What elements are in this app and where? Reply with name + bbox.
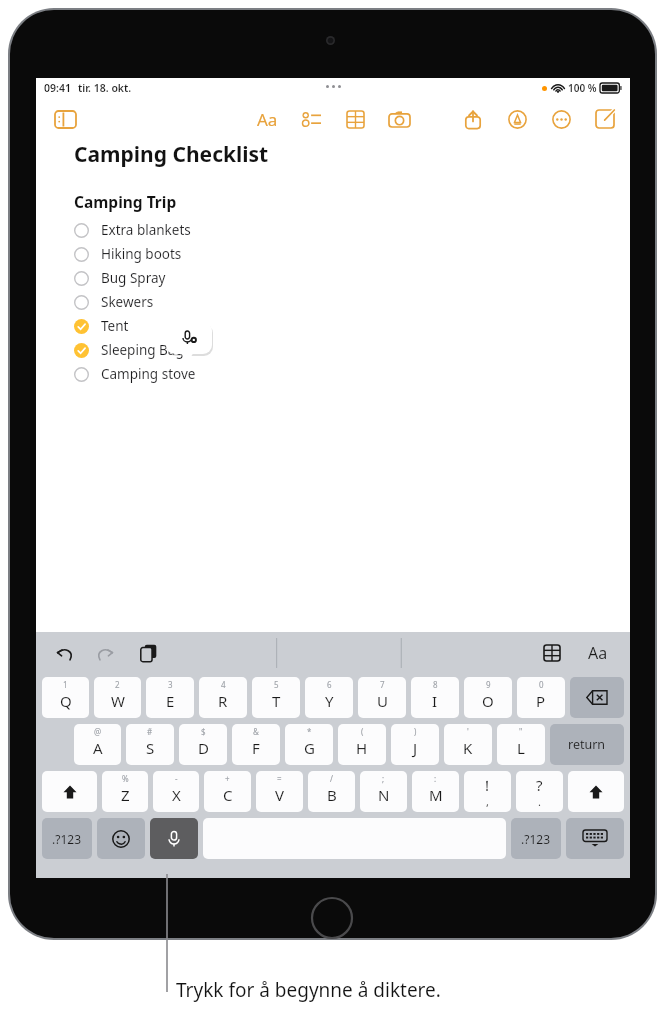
button[interactable]: Insert table: [538, 639, 566, 667]
button[interactable]: Undo: [50, 639, 78, 667]
button[interactable]: %: [102, 771, 148, 812]
button[interactable]: Checklist: [294, 102, 328, 136]
button[interactable]: return: [550, 724, 624, 765]
staticText: Camping Checklist: [74, 140, 269, 169]
button[interactable]: Table: [338, 102, 372, 136]
staticText: Camping Trip: [74, 191, 177, 212]
staticText: 09:41: [44, 81, 71, 95]
button[interactable]: 3: [146, 677, 194, 718]
staticText: F: [252, 738, 260, 758]
staticText: &: [253, 726, 259, 737]
staticText: ?: [536, 775, 543, 795]
staticText: E: [166, 691, 175, 711]
button[interactable]: 2: [94, 677, 141, 718]
staticText: S: [146, 738, 155, 758]
staticText: O: [482, 691, 494, 711]
staticText: @: [94, 726, 102, 737]
button[interactable]: Extra blankets: [74, 218, 630, 242]
button[interactable]: Dictate: [150, 818, 198, 859]
button[interactable]: Emoji: [97, 818, 145, 859]
button[interactable]: (: [338, 724, 386, 765]
button[interactable]: 7: [358, 677, 406, 718]
staticText: /: [330, 773, 333, 784]
button[interactable]: 5: [252, 677, 300, 718]
button[interactable]: Bug Spray: [74, 266, 630, 290]
button[interactable]: Markup: [500, 102, 534, 136]
button[interactable]: +: [204, 771, 251, 812]
staticText: X: [172, 785, 181, 805]
staticText: .?123: [521, 831, 551, 847]
button[interactable]: Skewers: [74, 290, 630, 314]
staticText: =: [277, 773, 282, 784]
staticText: V: [275, 785, 285, 805]
button[interactable]: $: [179, 724, 227, 765]
button[interactable]: 0: [517, 677, 565, 718]
button[interactable]: ': [444, 724, 492, 765]
staticText: N: [378, 785, 390, 805]
staticText: Bug Spray: [101, 269, 166, 287]
button[interactable]: /: [308, 771, 355, 812]
button[interactable]: *: [285, 724, 333, 765]
staticText: ,: [486, 794, 489, 809]
button[interactable]: Text format: [584, 639, 612, 667]
button[interactable]: 8: [411, 677, 459, 718]
button[interactable]: 1: [42, 677, 89, 718]
staticText: Trykk for å begynne å diktere.: [176, 977, 441, 1003]
button[interactable]: &: [232, 724, 280, 765]
button[interactable]: @: [74, 724, 121, 765]
button[interactable]: Show sidebar: [48, 102, 82, 136]
button[interactable]: Share: [456, 102, 490, 136]
button[interactable]: .?123: [511, 818, 561, 859]
button[interactable]: .: [516, 771, 563, 812]
staticText: Tent: [101, 317, 129, 335]
staticText: $: [201, 726, 206, 737]
button[interactable]: #: [126, 724, 174, 765]
button[interactable]: 6: [305, 677, 353, 718]
button[interactable]: :: [412, 771, 459, 812]
button[interactable]: .?123: [42, 818, 92, 859]
staticText: !: [485, 775, 490, 795]
staticText: B: [327, 785, 337, 805]
staticText: 7: [380, 679, 385, 690]
staticText: I: [432, 691, 438, 711]
button[interactable]: Redo: [92, 639, 120, 667]
button[interactable]: Camera: [382, 102, 416, 136]
staticText: 100 %: [568, 81, 597, 95]
staticText: Extra blankets: [101, 221, 191, 239]
button[interactable]: =: [256, 771, 303, 812]
staticText: #: [147, 726, 153, 737]
button[interactable]: More: [544, 102, 578, 136]
button[interactable]: -: [153, 771, 199, 812]
button[interactable]: ,: [464, 771, 511, 812]
staticText: :: [434, 773, 437, 784]
button[interactable]: ": [497, 724, 545, 765]
button[interactable]: 4: [199, 677, 247, 718]
staticText: %: [122, 773, 129, 784]
button[interactable]: Delete: [570, 677, 624, 718]
staticText: Camping stove: [101, 365, 196, 383]
staticText: Q: [60, 691, 72, 711]
button[interactable]: 9: [464, 677, 512, 718]
button[interactable]: Tent: [74, 314, 630, 338]
button[interactable]: Sleeping Bags: [74, 338, 630, 362]
staticText: J: [413, 738, 418, 758]
staticText: L: [517, 738, 525, 758]
staticText: 3: [168, 679, 173, 690]
staticText: 8: [433, 679, 438, 690]
staticText: Z: [121, 785, 130, 805]
button[interactable]: ): [391, 724, 439, 765]
button[interactable]: Hiking boots: [74, 242, 630, 266]
button[interactable]: Hide keyboard: [566, 818, 624, 859]
staticText: C: [223, 785, 233, 805]
button[interactable]: Paste: [134, 639, 162, 667]
staticText: D: [198, 738, 209, 758]
button[interactable]: Shift: [568, 771, 624, 812]
button[interactable]: Camping stove: [74, 362, 630, 386]
staticText: -: [175, 773, 178, 784]
button[interactable]: New note: [588, 102, 622, 136]
button[interactable]: Text format: [250, 102, 284, 136]
button[interactable]: ;: [360, 771, 407, 812]
staticText: +: [225, 773, 230, 784]
button[interactable]: Shift: [42, 771, 97, 812]
